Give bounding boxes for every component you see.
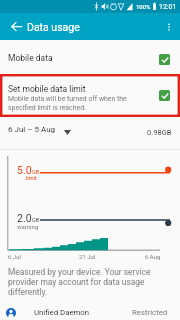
staticText: Measured by your device. Your service pr…: [8, 267, 151, 297]
button[interactable]: Set mobile data limit: [0, 74, 180, 117]
staticText: Data usage: [27, 21, 80, 33]
staticText: 6 Aug: [145, 253, 161, 260]
button[interactable]: 6 Jul – 5 Aug: [3, 122, 76, 137]
staticText: Restricted: [132, 308, 168, 317]
staticText: 12:01: [159, 3, 177, 11]
button[interactable]: Mobile data: [0, 40, 180, 74]
staticText: Set mobile data limit: [8, 84, 86, 94]
staticText: 6 Jul: [8, 253, 21, 260]
button[interactable]: Unified Daemon: [0, 302, 180, 320]
staticText: warning: [17, 223, 39, 230]
staticText: Unified Daemon: [34, 308, 90, 317]
staticText: 5.0: [17, 164, 32, 176]
staticText: Mobile data will be turned off when the …: [8, 95, 127, 112]
button[interactable]: Enabled: [159, 54, 170, 65]
staticText: 0.98GB: [147, 128, 172, 137]
staticText: 6 Jul – 5 Aug: [8, 125, 56, 134]
staticText: GB: [32, 217, 40, 223]
staticText: limit: [26, 175, 37, 181]
staticText: Mobile data: [8, 53, 53, 63]
button[interactable]: More options: [160, 18, 178, 36]
staticText: 100%: [136, 3, 151, 10]
staticText: 21 Jul: [79, 253, 96, 260]
staticText: GB: [32, 169, 40, 175]
staticText: 2.0: [17, 212, 32, 224]
button[interactable]: Navigate up: [9, 19, 24, 34]
button[interactable]: Enabled: [159, 90, 170, 101]
